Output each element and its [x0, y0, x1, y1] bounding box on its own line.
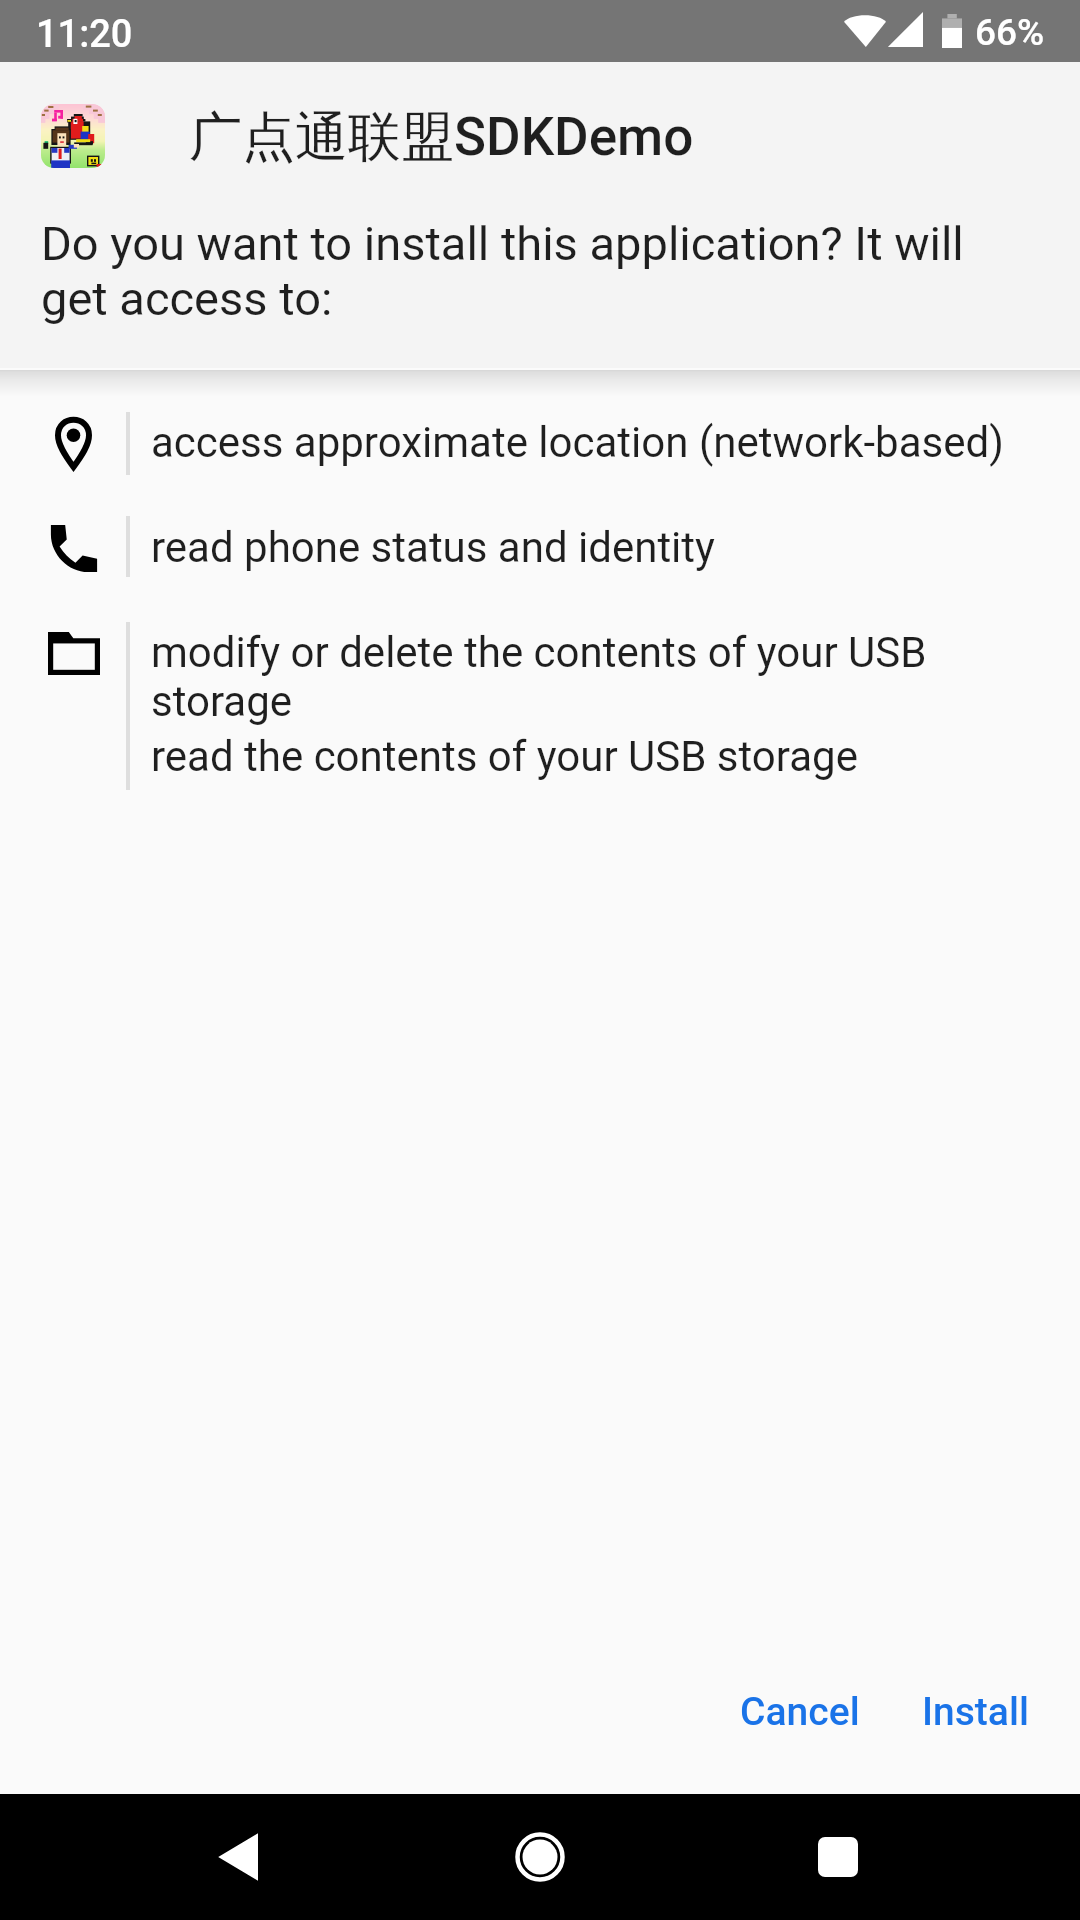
staticText: modify or delete the contents of your US…: [151, 628, 1031, 726]
staticText: access approximate location (network-bas…: [151, 418, 1004, 467]
staticText: read the contents of your USB storage: [151, 732, 858, 781]
button[interactable]: Install: [907, 1671, 1044, 1753]
staticText: 66%: [975, 11, 1045, 54]
button[interactable]: Home: [480, 1797, 600, 1917]
staticText: 11:20: [36, 12, 133, 57]
button[interactable]: Back: [179, 1797, 299, 1917]
button[interactable]: Cancel: [725, 1671, 875, 1753]
staticText: Install: [922, 1689, 1029, 1735]
staticText: 广点通联盟SDKDemo: [189, 104, 694, 171]
button[interactable]: Recent apps: [778, 1797, 898, 1917]
staticText: read phone status and identity: [151, 523, 715, 572]
staticText: Cancel: [740, 1689, 860, 1735]
staticText: Do you want to install this application?…: [41, 216, 1001, 327]
